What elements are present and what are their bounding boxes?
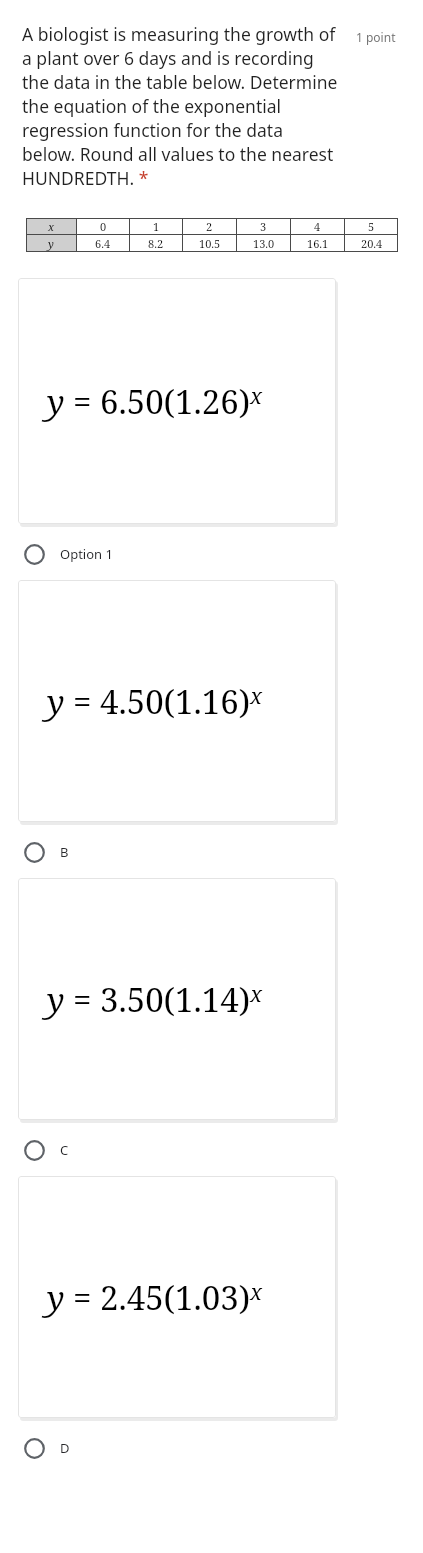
button[interactable]: B — [0, 835, 423, 869]
staticText: y = 4.50(1.16)x — [47, 679, 263, 724]
staticText: C — [60, 1141, 69, 1159]
staticText: HUNDREDTH. * — [22, 166, 149, 190]
staticText: the equation of the exponential — [22, 94, 282, 118]
staticText: y = 3.50(1.14)x — [47, 977, 263, 1022]
staticText: the data in the table below. Determine — [22, 70, 338, 94]
staticText: 4 — [314, 219, 321, 234]
staticText: 3 — [260, 219, 267, 234]
staticText: B — [60, 843, 69, 861]
staticText: 2 — [206, 219, 213, 234]
button[interactable]: D — [0, 1431, 423, 1465]
staticText: 0 — [100, 219, 107, 234]
staticText: y = 2.45(1.03)x — [47, 1275, 263, 1320]
staticText: 1 — [153, 219, 160, 234]
staticText: Option 1 — [60, 545, 113, 563]
button[interactable]: Option 1 — [0, 537, 423, 571]
staticText: x — [48, 219, 55, 234]
staticText: D — [60, 1439, 70, 1457]
staticText: regression function for the data — [22, 118, 283, 142]
staticText: y — [48, 236, 54, 251]
staticText: a plant over 6 days and is recording — [22, 46, 314, 70]
staticText: 16.1 — [307, 236, 329, 251]
staticText: A biologist is measuring the growth of — [22, 22, 336, 46]
staticText: 8.2 — [148, 236, 164, 251]
button[interactable]: C — [0, 1133, 423, 1167]
staticText: 6.4 — [95, 236, 111, 251]
staticText: 1 point — [356, 29, 396, 45]
staticText: 20.4 — [361, 236, 383, 251]
staticText: 13.0 — [253, 236, 275, 251]
staticText: 5 — [368, 219, 375, 234]
staticText: below. Round all values to the nearest — [22, 142, 334, 166]
staticText: y = 6.50(1.26)x — [47, 379, 263, 424]
staticText: 10.5 — [199, 236, 221, 251]
